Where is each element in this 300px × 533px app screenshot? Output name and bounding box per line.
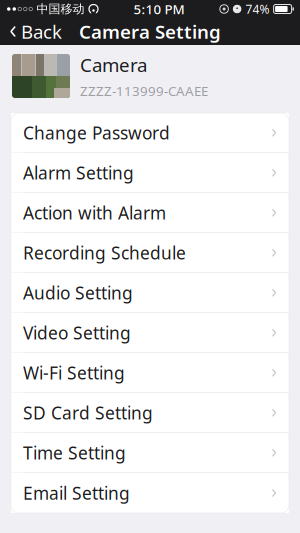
button[interactable]: Time Setting [11,433,289,473]
button[interactable]: Wi-Fi Setting [11,353,289,393]
button[interactable]: Change Password [11,113,289,153]
staticText: Email Setting [23,481,130,504]
staticText: Camera Setting [79,19,221,44]
button[interactable]: Video Setting [11,313,289,353]
staticText: 74% [246,1,270,17]
button[interactable]: Back [0,14,62,49]
staticText: Alarm Setting [23,161,134,184]
button[interactable]: Recording Schedule [11,233,289,273]
staticText: 5:10 PM [134,0,185,18]
button[interactable]: SD Card Setting [11,393,289,433]
button[interactable]: Audio Setting [11,273,289,313]
button[interactable]: Email Setting [11,473,289,513]
staticText: Audio Setting [23,281,133,304]
staticText: SD Card Setting [23,401,153,424]
staticText: Camera [80,52,147,77]
staticText: Wi-Fi Setting [23,361,125,384]
staticText: Change Password [23,121,170,144]
staticText: ZZZZ-113999-CAAEE [80,82,208,100]
staticText: 中国移动 [36,2,84,16]
button[interactable]: Action with Alarm [11,193,289,233]
staticText: Recording Schedule [23,241,186,264]
staticText: Back [21,19,62,44]
staticText: Time Setting [23,441,126,464]
staticText: Video Setting [23,321,131,344]
button[interactable]: Alarm Setting [11,153,289,193]
staticText: Action with Alarm [23,201,166,224]
